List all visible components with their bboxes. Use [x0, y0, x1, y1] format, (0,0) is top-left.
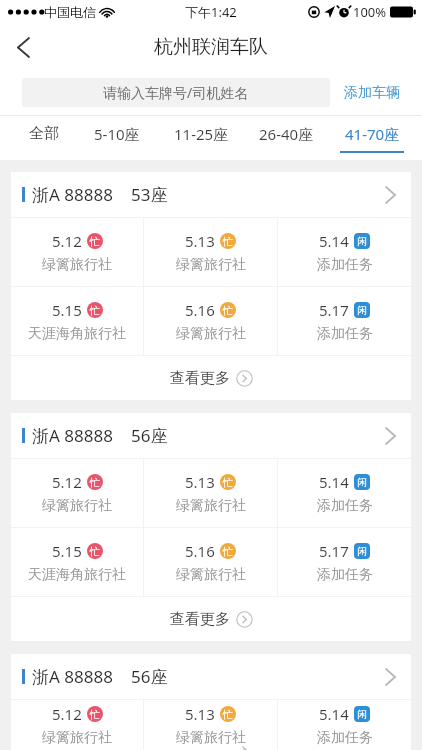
staticText: 5.13 — [185, 472, 215, 492]
staticText: 请输入车牌号/司机姓名 — [103, 83, 249, 102]
staticText: 中国电信 — [44, 4, 96, 20]
staticText: 添加任务 — [317, 566, 373, 584]
staticText: 5.12 — [52, 472, 82, 492]
staticText: 5.17 — [319, 300, 349, 320]
staticText: 忙 — [223, 545, 233, 558]
button[interactable]: 5.12 — [11, 218, 143, 286]
staticText: 绿篱旅行社 — [42, 256, 112, 274]
button[interactable]: 5.13 — [144, 700, 277, 750]
staticText: 闲 — [357, 476, 367, 489]
button[interactable]: 5.16 — [144, 287, 277, 355]
staticText: 56座 — [131, 424, 168, 447]
button[interactable]: 浙A 88888 — [11, 413, 411, 458]
staticText: 5.14 — [319, 472, 349, 492]
staticText: 5.17 — [319, 541, 349, 561]
staticText: 5.12 — [52, 704, 82, 724]
staticText: 绿篱旅行社 — [176, 325, 246, 343]
button[interactable]: 5.14 — [278, 700, 411, 750]
staticText: 26-40座 — [259, 124, 314, 144]
staticText: 5.15 — [52, 300, 82, 320]
button[interactable]: 5.15 — [11, 528, 143, 596]
button[interactable]: 11-25座 — [159, 116, 244, 160]
button[interactable]: 浙A 88888 — [11, 172, 411, 217]
button[interactable]: 5.15 — [11, 287, 143, 355]
button[interactable]: 5-10座 — [74, 116, 159, 160]
staticText: 绿篱旅行社 — [176, 497, 246, 515]
staticText: 5.15 — [52, 541, 82, 561]
staticText: 5.14 — [319, 231, 349, 251]
staticText: 忙 — [90, 708, 100, 721]
staticText: 5.16 — [185, 300, 215, 320]
staticText: 5.13 — [185, 704, 215, 724]
staticText: 53座 — [131, 183, 168, 206]
staticText: 浙A 88888 — [32, 665, 113, 688]
button[interactable]: 查看更多 — [11, 597, 411, 641]
button[interactable]: 5.17 — [278, 528, 411, 596]
button[interactable]: 5.12 — [11, 700, 143, 750]
staticText: 绿篱旅行社 — [176, 256, 246, 274]
staticText: 天涯海角旅行社 — [28, 566, 126, 584]
staticText: 100% — [353, 3, 387, 21]
staticText: 闲 — [357, 545, 367, 558]
staticText: 绿篱旅行社 — [42, 729, 112, 747]
staticText: 闲 — [357, 235, 367, 248]
button[interactable]: 5.12 — [11, 459, 143, 527]
button[interactable]: 41-70座 — [329, 116, 414, 160]
staticText: 查看更多 — [170, 369, 230, 388]
staticText: 5.12 — [52, 231, 82, 251]
staticText: 5.13 — [185, 231, 215, 251]
other: Details — [386, 187, 395, 203]
staticText: 下午1:42 — [185, 3, 237, 21]
button[interactable]: Back — [0, 24, 46, 70]
staticText: 查看更多 — [170, 610, 230, 629]
staticText: 忙 — [90, 235, 100, 248]
staticText: 闲 — [357, 304, 367, 317]
staticText: 添加任务 — [317, 497, 373, 515]
staticText: 绿篱旅行社 — [42, 497, 112, 515]
staticText: 41-70座 — [345, 124, 400, 144]
staticText: 全部 — [29, 124, 59, 143]
staticText: 闲 — [357, 708, 367, 721]
staticText: 绿篱旅行社 — [176, 566, 246, 584]
staticText: 浙A 88888 — [32, 424, 113, 447]
other: Details — [386, 669, 395, 685]
button[interactable]: 5.13 — [144, 459, 277, 527]
button[interactable]: 26-40座 — [244, 116, 329, 160]
staticText: 56座 — [131, 665, 168, 688]
staticText: 5.16 — [185, 541, 215, 561]
button[interactable]: 全部 — [14, 116, 74, 160]
staticText: 浙A 88888 — [32, 183, 113, 206]
button[interactable]: 添加车辆 — [344, 84, 400, 102]
button[interactable]: 5.16 — [144, 528, 277, 596]
button[interactable]: 查看更多 — [11, 356, 411, 400]
staticText: 杭州联润车队 — [154, 35, 268, 59]
staticText: 5.14 — [319, 704, 349, 724]
staticText: 忙 — [223, 708, 233, 721]
staticText: 添加车辆 — [344, 84, 400, 102]
button[interactable]: 浙A 88888 — [11, 654, 411, 699]
staticText: 添加任务 — [317, 729, 373, 747]
staticText: 添加任务 — [317, 256, 373, 274]
button[interactable]: 5.14 — [278, 218, 411, 286]
staticText: 绿篱旅行社 — [176, 729, 246, 747]
button[interactable]: 5.13 — [144, 218, 277, 286]
staticText: 天涯海角旅行社 — [28, 325, 126, 343]
staticText: 忙 — [223, 235, 233, 248]
staticText: 忙 — [223, 476, 233, 489]
staticText: 忙 — [90, 304, 100, 317]
other: Details — [386, 428, 395, 444]
staticText: 5-10座 — [94, 124, 140, 144]
button[interactable]: 请输入车牌号/司机姓名 — [22, 78, 330, 107]
staticText: 11-25座 — [174, 124, 229, 144]
staticText: 添加任务 — [317, 325, 373, 343]
button[interactable]: 5.14 — [278, 459, 411, 527]
staticText: 忙 — [223, 304, 233, 317]
button[interactable]: 5.17 — [278, 287, 411, 355]
staticText: 忙 — [90, 476, 100, 489]
staticText: 忙 — [90, 545, 100, 558]
